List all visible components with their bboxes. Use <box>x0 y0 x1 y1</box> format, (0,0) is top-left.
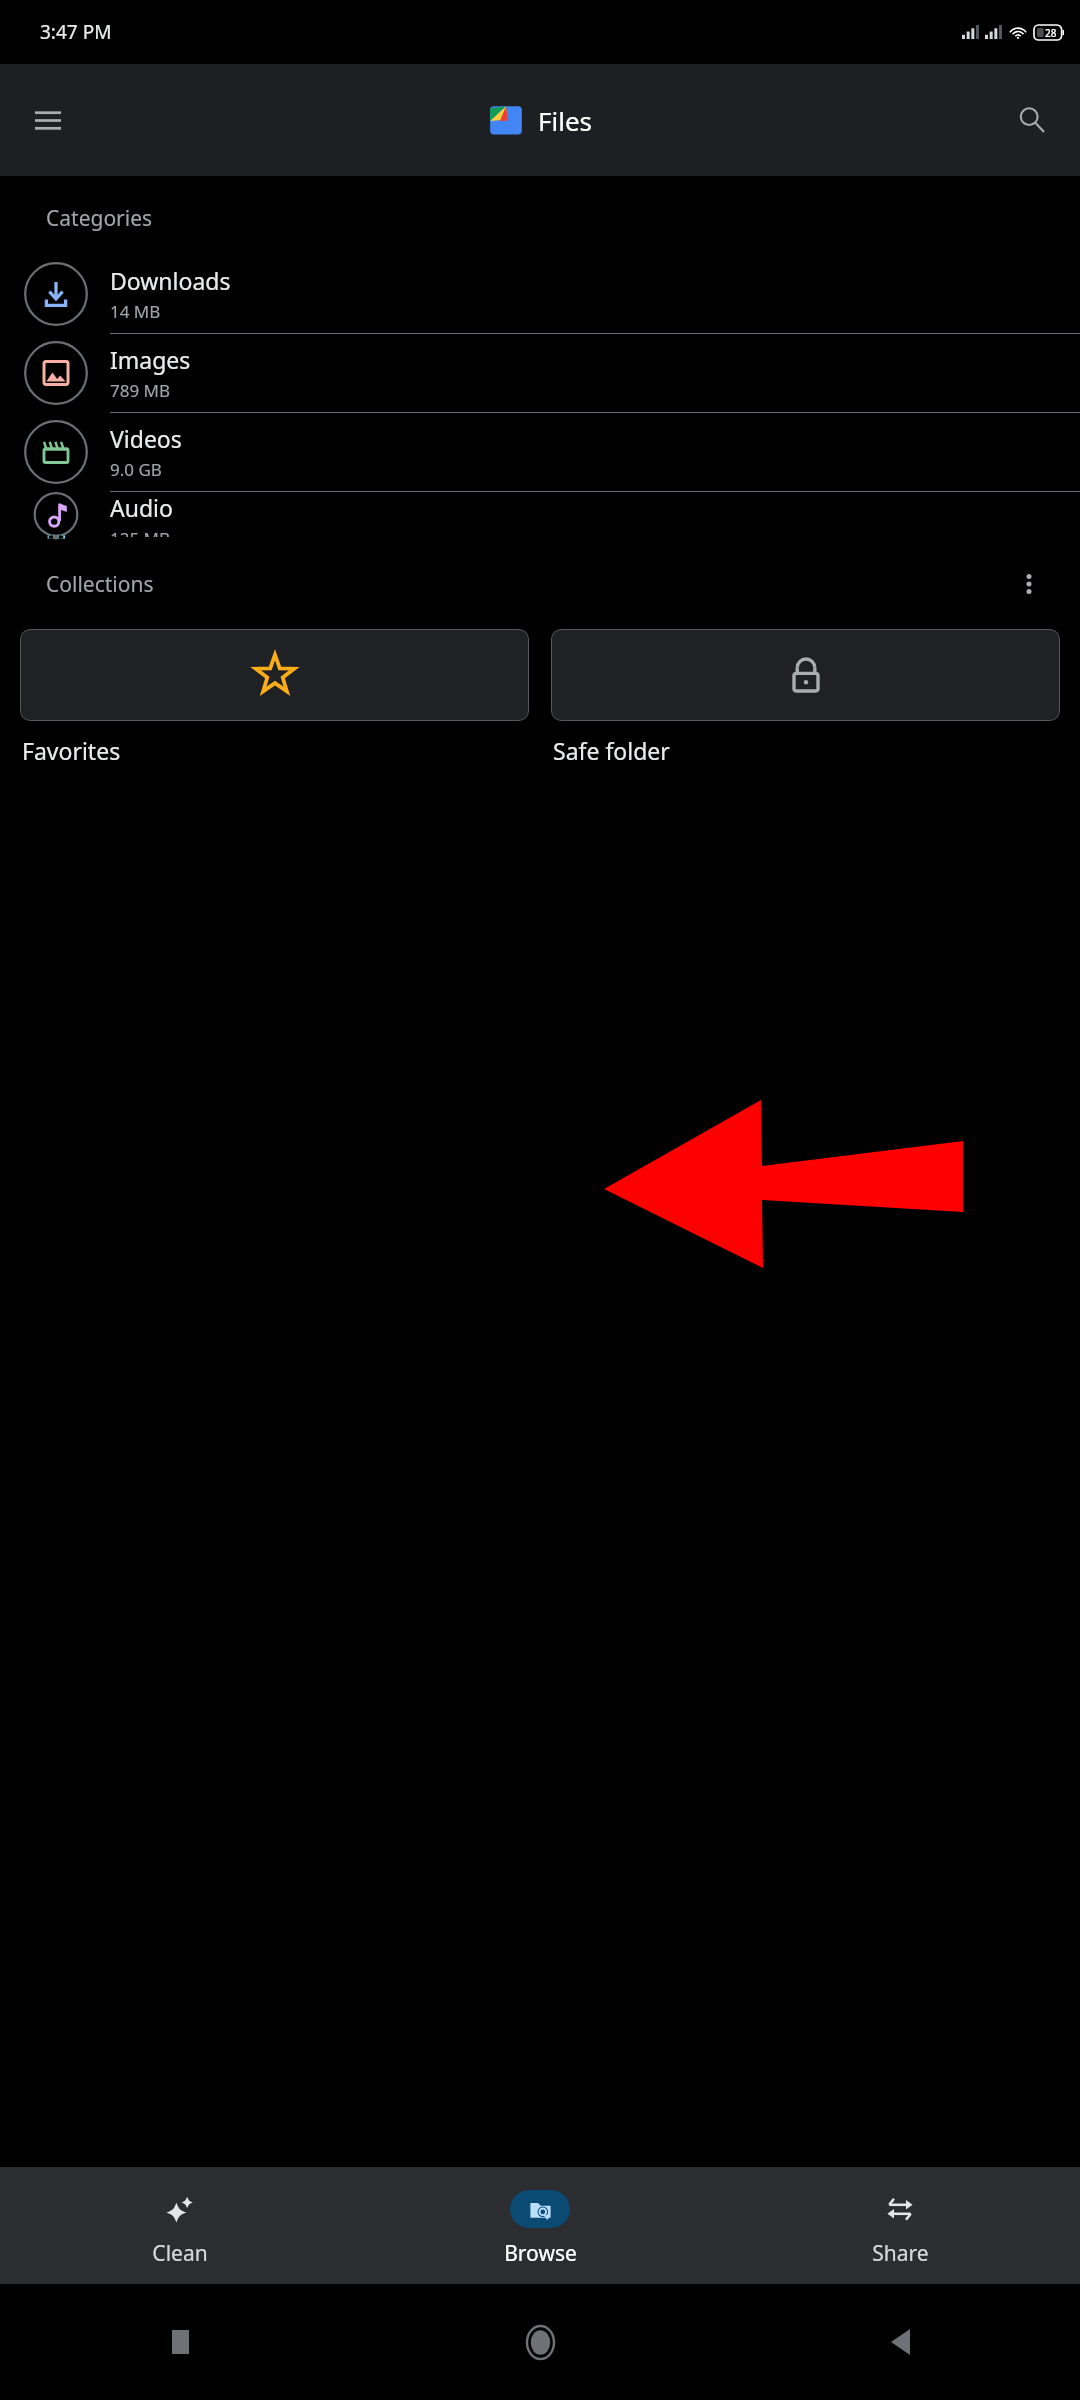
staticText: 789 MB <box>110 379 171 402</box>
staticText: Collections <box>46 570 154 599</box>
staticText: Favorites <box>22 735 121 766</box>
staticText: Files <box>538 103 593 138</box>
button[interactable]: Favorites <box>20 629 529 766</box>
button[interactable]: Videos <box>0 413 1080 492</box>
staticText: Downloads <box>110 265 231 296</box>
button[interactable]: Safe folder <box>551 629 1060 766</box>
button[interactable]: Back <box>720 2284 1080 2400</box>
staticText: Safe folder <box>553 735 670 766</box>
staticText: Videos <box>110 423 182 454</box>
staticText: 9.0 GB <box>110 458 162 481</box>
staticText: Browse <box>504 2239 577 2268</box>
staticText: Categories <box>46 204 153 233</box>
button[interactable]: More options <box>1006 561 1052 607</box>
button[interactable]: Search <box>1002 90 1062 150</box>
button[interactable]: Audio <box>0 492 1080 537</box>
staticText: 3:47 PM <box>40 19 112 45</box>
button[interactable]: Clean <box>0 2183 360 2268</box>
staticText: Audio <box>110 492 173 523</box>
staticText: Share <box>872 2239 929 2268</box>
staticText: 28 <box>1045 26 1057 40</box>
staticText: 14 MB <box>110 300 161 323</box>
staticText: 125 MB <box>110 527 171 537</box>
staticText: Clean <box>152 2239 208 2268</box>
staticText: Images <box>110 344 191 375</box>
button[interactable]: Browse <box>360 2183 720 2268</box>
button[interactable]: Downloads <box>0 255 1080 334</box>
button[interactable]: Home <box>360 2284 720 2400</box>
button[interactable]: Open navigation menu <box>18 90 78 150</box>
button[interactable]: Images <box>0 334 1080 413</box>
button[interactable]: Recent apps <box>0 2284 360 2400</box>
button[interactable]: Share <box>720 2183 1080 2268</box>
